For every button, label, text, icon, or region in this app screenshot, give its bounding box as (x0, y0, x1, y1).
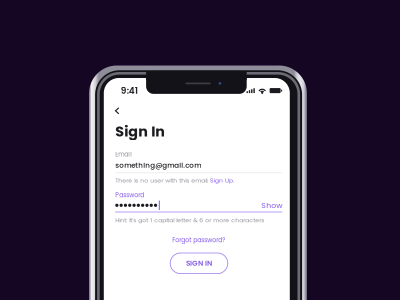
staticText: 9:41 (121, 84, 138, 97)
staticText: Forgot password? (172, 236, 225, 244)
staticText: Show (261, 200, 282, 211)
staticText: Email (115, 150, 132, 159)
button[interactable]: SIGN IN (170, 253, 228, 274)
staticText: Sign Up. (210, 176, 234, 185)
button[interactable]: Sign Up. (210, 176, 234, 185)
staticText: Password (115, 191, 144, 199)
staticText: SIGN IN (186, 258, 212, 268)
staticText: Hint: It's got 1 capital letter & 6 or m… (115, 216, 264, 224)
staticText: There is no user with this email. (115, 176, 208, 185)
staticText: Sign In (115, 121, 165, 141)
button[interactable]: Forgot password? (167, 234, 231, 246)
button[interactable]: Back (115, 103, 132, 118)
staticText: something@gmail.com (115, 160, 201, 170)
button[interactable]: Show (261, 200, 282, 211)
